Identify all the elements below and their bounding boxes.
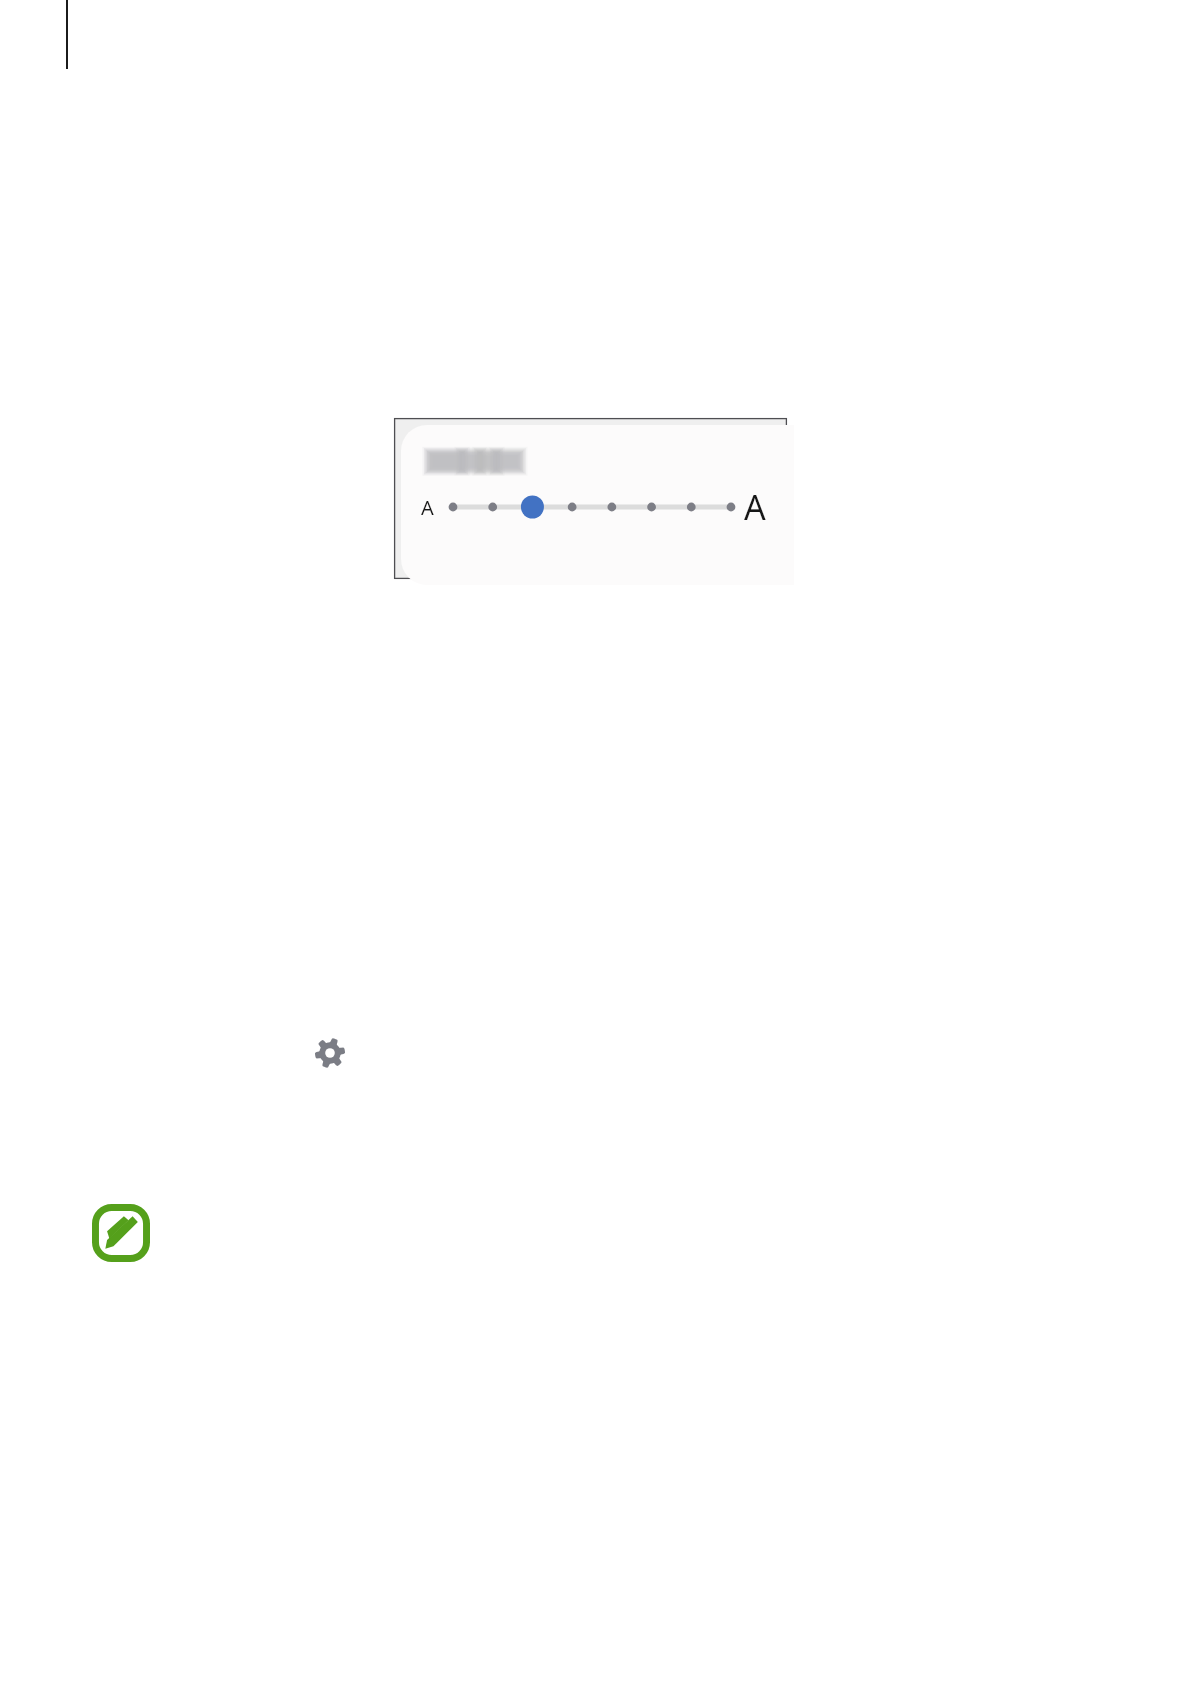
staticText: A — [421, 494, 434, 521]
button[interactable] — [448, 485, 736, 529]
button[interactable]: Settings — [302, 1025, 358, 1081]
staticText: A — [744, 484, 766, 530]
button[interactable]: Samsung Notes — [85, 1197, 157, 1269]
button[interactable]: A — [401, 425, 794, 585]
